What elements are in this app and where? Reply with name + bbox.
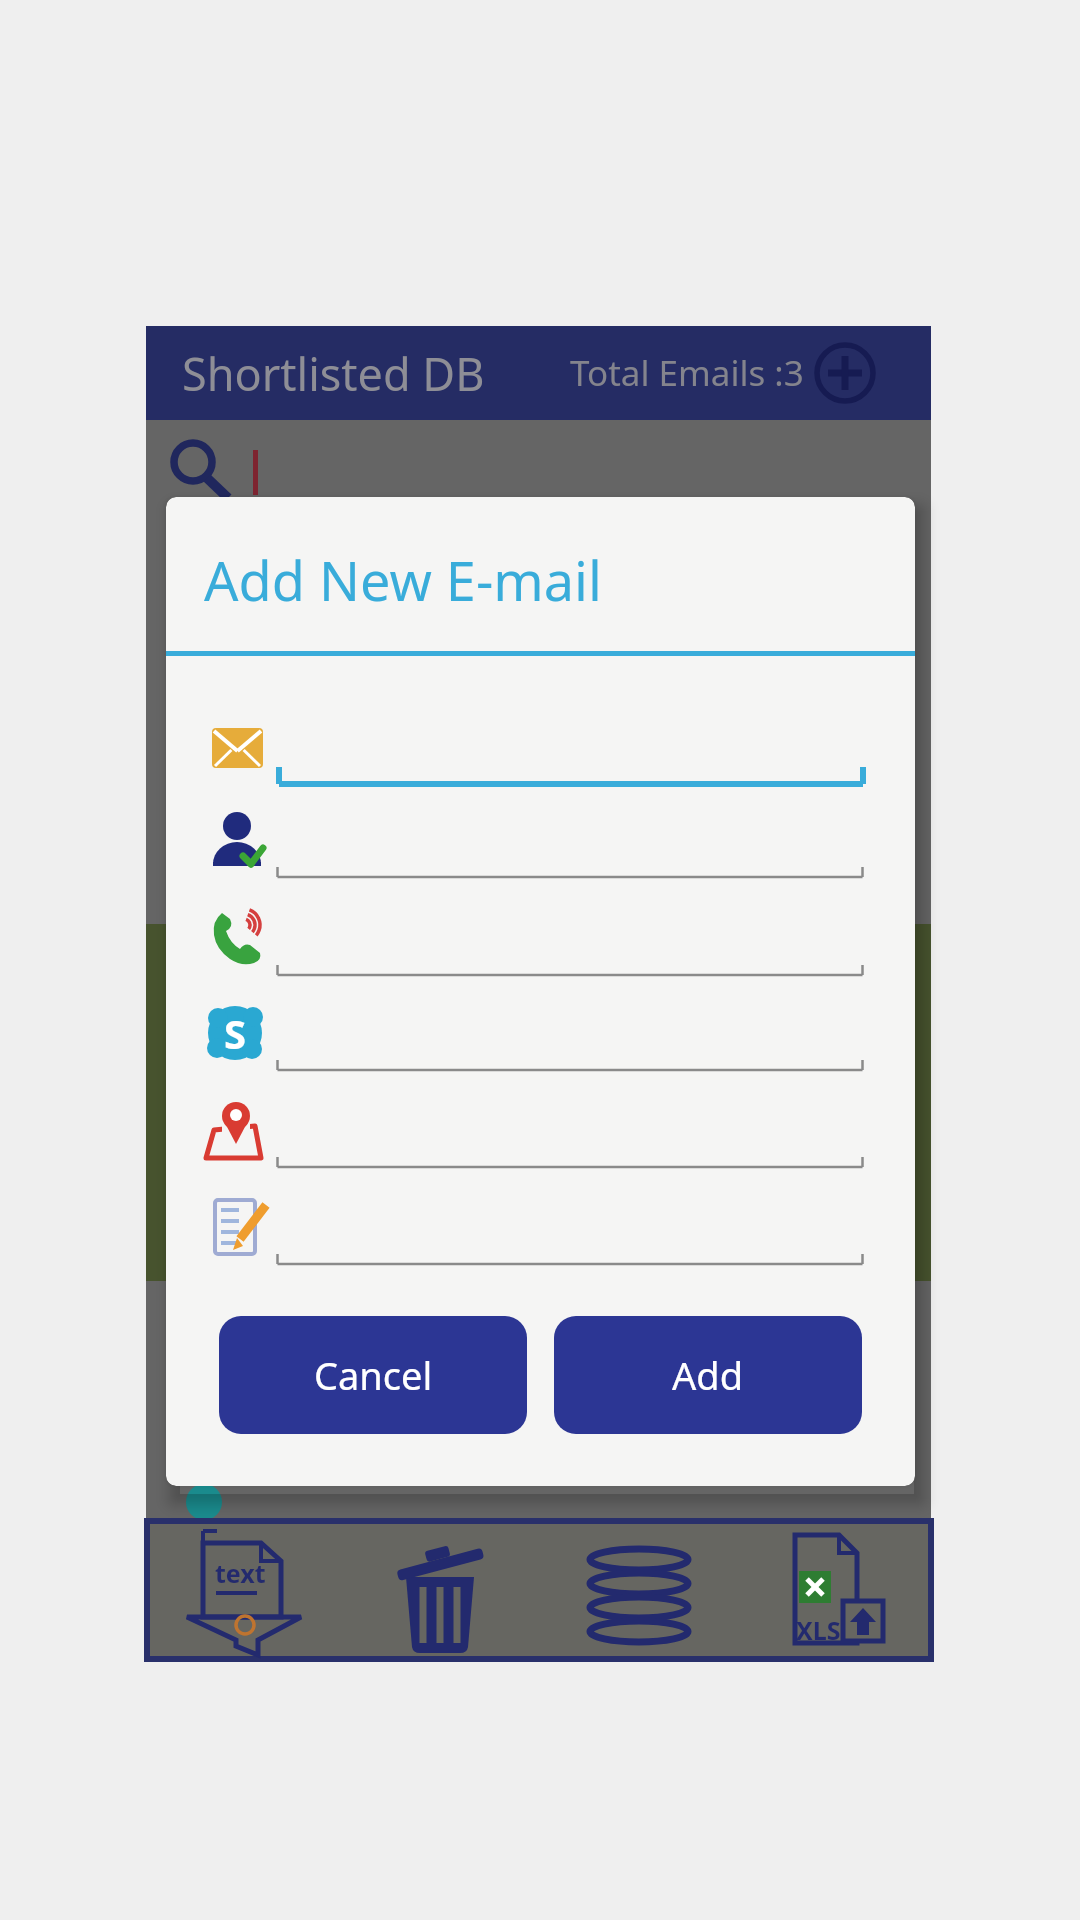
- button[interactable]: Cancel: [219, 1316, 527, 1434]
- staticText: text: [215, 1556, 266, 1590]
- staticText: S: [224, 1006, 247, 1060]
- button[interactable]: [787, 1533, 897, 1651]
- staticText: XLS: [796, 1613, 841, 1647]
- staticText: Shortlisted DB: [182, 343, 485, 404]
- staticText: Add New E-mail: [204, 543, 602, 617]
- button[interactable]: [187, 1531, 317, 1659]
- button[interactable]: [814, 342, 876, 404]
- staticText: Cancel: [314, 1349, 433, 1401]
- button[interactable]: [584, 1547, 694, 1647]
- button[interactable]: [392, 1535, 492, 1650]
- staticText: Add: [672, 1349, 744, 1401]
- button[interactable]: Add: [554, 1316, 862, 1434]
- staticText: Total Emails :3: [570, 349, 804, 397]
